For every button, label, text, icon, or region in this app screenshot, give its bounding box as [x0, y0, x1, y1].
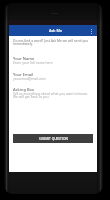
button[interactable]: More options	[87, 27, 95, 35]
button[interactable]: Your Email	[13, 72, 93, 82]
staticText: SUBMIT QUESTION	[39, 137, 68, 141]
staticText: Enter your full name here	[13, 60, 53, 64]
button[interactable]: Your Name	[13, 56, 93, 66]
staticText: youremail@mail.com	[13, 76, 46, 80]
staticText: Tell us everything about what you want t…	[13, 91, 93, 99]
staticText: Your Email	[13, 72, 34, 77]
button[interactable]: Asking Box	[13, 87, 93, 97]
staticText: Asking Box	[13, 87, 35, 92]
button[interactable]: SUBMIT QUESTION	[13, 134, 93, 143]
staticText: Your Name	[13, 56, 35, 61]
staticText: Do not find a word? Just Ask Me we will …	[13, 38, 93, 46]
staticText: Ask Me	[49, 28, 63, 33]
